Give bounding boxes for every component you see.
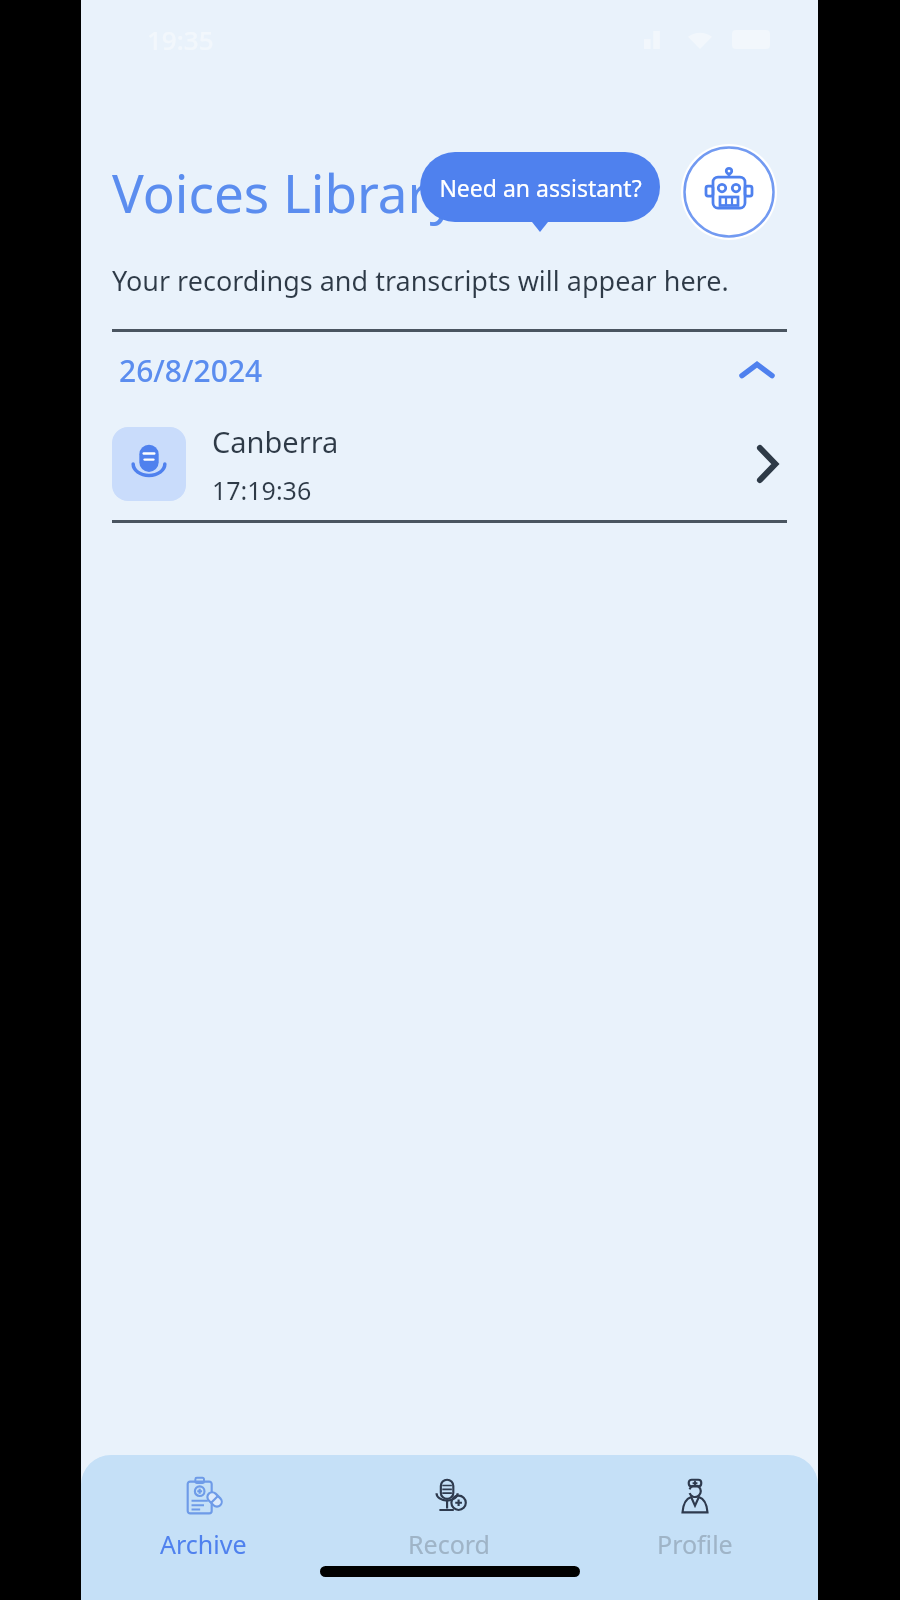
button[interactable]: Need an assistant? (420, 152, 660, 232)
staticText: 19:35 (147, 22, 214, 57)
staticText: Record (408, 1527, 490, 1561)
staticText: Archive (160, 1527, 247, 1561)
staticText: 26/8/2024 (119, 350, 263, 391)
button[interactable]: Canberra (81, 408, 818, 520)
button[interactable]: 26/8/2024 (81, 332, 818, 408)
staticText: Voices Library (112, 156, 457, 228)
button[interactable]: Open assistant (681, 144, 777, 240)
staticText: Your recordings and transcripts will app… (112, 262, 729, 299)
button[interactable]: Record (326, 1467, 572, 1567)
button[interactable]: Archive (81, 1467, 326, 1567)
staticText: 17:19:36 (212, 473, 312, 507)
staticText: Canberra (212, 422, 339, 461)
staticText: Profile (657, 1527, 733, 1561)
staticText: Need an assistant? (439, 172, 642, 203)
button[interactable]: Profile (572, 1467, 818, 1567)
